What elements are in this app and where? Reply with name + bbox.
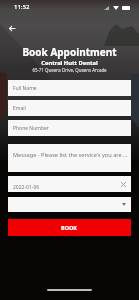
button[interactable]: Message - Please list the service's you … [8, 144, 131, 172]
button[interactable]: Full Name [8, 80, 131, 96]
button[interactable] [8, 197, 131, 212]
button[interactable]: 2022-01-06 [8, 176, 131, 192]
staticText: 65-71 Queens Drive, Queens Arcade [0, 67, 139, 73]
staticText: Email [13, 105, 26, 112]
staticText: Book Appointment [0, 45, 139, 59]
button[interactable]: Phone Number [8, 120, 131, 136]
staticText: Message - Please list the service's you … [13, 151, 128, 159]
button[interactable]: BOOK [8, 219, 131, 236]
staticText: Central Hutt Dental [0, 59, 139, 67]
button[interactable]: Email [8, 100, 131, 116]
staticText: 11:52 [14, 3, 30, 11]
staticText: BOOK [61, 224, 78, 231]
staticText: Full Name [13, 85, 37, 92]
staticText: Phone Number [13, 125, 49, 132]
button[interactable]: Back [6, 22, 18, 34]
staticText: 2022-01-06 [13, 184, 40, 191]
